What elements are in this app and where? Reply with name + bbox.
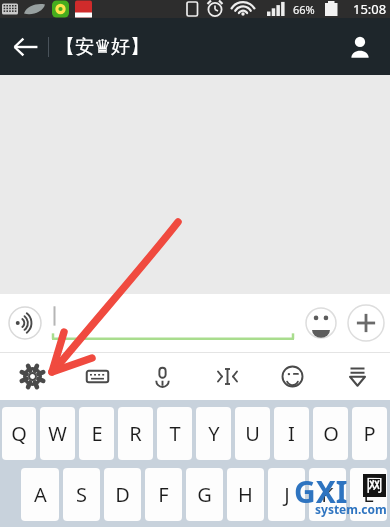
button[interactable]: Back [2, 23, 50, 71]
button[interactable]: T [157, 407, 192, 460]
staticText: 网 [366, 475, 383, 496]
button[interactable]: S [63, 468, 100, 521]
button[interactable]: I [274, 407, 309, 460]
button[interactable]: F [145, 468, 182, 521]
staticText: Q [11, 420, 27, 447]
staticText: R [129, 420, 142, 447]
button[interactable]: Emoticons [260, 353, 325, 400]
button[interactable]: A [21, 468, 59, 521]
button[interactable]: W [40, 407, 75, 460]
button[interactable]: P [352, 407, 387, 460]
staticText: I [288, 420, 295, 447]
staticText: P [363, 420, 376, 447]
button[interactable]: More [343, 300, 389, 346]
staticText: T [169, 420, 181, 447]
staticText: E [91, 420, 103, 447]
button[interactable]: L [350, 468, 387, 521]
staticText: J [284, 481, 290, 508]
staticText: 【安♛好】 [56, 35, 150, 59]
button[interactable]: Y [196, 407, 231, 460]
staticText: GXI [294, 471, 348, 512]
staticText: S [76, 481, 87, 508]
button[interactable]: R [118, 407, 153, 460]
button[interactable]: Emoji [299, 301, 343, 345]
button[interactable]: E [79, 407, 114, 460]
staticText: L [363, 481, 374, 508]
button[interactable]: Keyboard layout [65, 353, 130, 400]
button[interactable]: Hide keyboard [325, 353, 390, 400]
staticText: D [115, 481, 130, 508]
button[interactable]: Voice input [3, 301, 47, 345]
staticText: Y [208, 420, 220, 447]
staticText: U [245, 420, 260, 447]
staticText: H [238, 481, 253, 508]
staticText: 66% [293, 2, 315, 17]
button[interactable]: O [313, 407, 348, 460]
button[interactable]: Settings [0, 353, 65, 400]
staticText: system.com [315, 501, 387, 517]
staticText: K [321, 481, 334, 508]
staticText: F [158, 481, 169, 508]
button[interactable]: H [227, 468, 264, 521]
staticText: G [197, 481, 212, 508]
button[interactable]: Voice input [130, 353, 195, 400]
button[interactable]: Profile [336, 23, 384, 71]
staticText: A [34, 481, 47, 508]
staticText: W [48, 420, 67, 447]
button[interactable]: U [235, 407, 270, 460]
button[interactable]: K [309, 468, 346, 521]
staticText: 15:08 [353, 0, 387, 18]
button[interactable]: Move cursor [195, 353, 260, 400]
button[interactable]: Q [2, 407, 36, 460]
staticText: O [323, 420, 339, 447]
button[interactable]: D [104, 468, 141, 521]
button[interactable] [52, 301, 294, 345]
button[interactable]: J [268, 468, 305, 521]
button[interactable]: G [186, 468, 223, 521]
